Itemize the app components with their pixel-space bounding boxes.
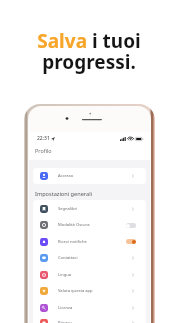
other: Open Lingua (130, 272, 136, 278)
staticText: Ricevi notifiche (58, 239, 87, 245)
button[interactable]: Valuta questa app (33, 283, 146, 299)
staticText: Modalità Oscura (58, 222, 90, 228)
button[interactable]: Modalità Oscura (33, 217, 146, 233)
staticText: Privacy (58, 320, 72, 323)
other: Open Valuta questa app (130, 288, 136, 294)
other: Open Privacy (130, 320, 136, 323)
staticText: Accesso (58, 173, 74, 179)
button[interactable]: Privacy (33, 316, 146, 323)
staticText: Valuta questa app (58, 288, 93, 294)
staticText: Lingua (58, 272, 72, 278)
button[interactable]: Switch on (126, 239, 136, 244)
button[interactable]: Switch off (126, 223, 136, 228)
staticText: Salva i tuoi progressi. (0, 28, 180, 74)
staticText: Profilo (35, 147, 52, 154)
staticText: Segnalibri (58, 206, 78, 212)
staticText: 22:31 (37, 135, 50, 142)
staticText: Licenza (58, 305, 73, 311)
button[interactable]: Lingua (33, 266, 146, 283)
staticText: Impostazioni generali (35, 190, 93, 198)
other: Open Licenza (130, 305, 136, 311)
other: Open Accesso (130, 173, 136, 179)
button[interactable]: Segnalibri (33, 200, 146, 217)
button[interactable]: Ricevi notifiche (33, 233, 146, 250)
other: Open Contattaci (130, 255, 136, 261)
button[interactable]: Accesso (33, 168, 146, 184)
button[interactable]: Contattaci (33, 250, 146, 266)
other: Open Segnalibri (130, 206, 136, 212)
button[interactable]: Licenza (33, 299, 146, 316)
staticText: Contattaci (58, 255, 78, 261)
